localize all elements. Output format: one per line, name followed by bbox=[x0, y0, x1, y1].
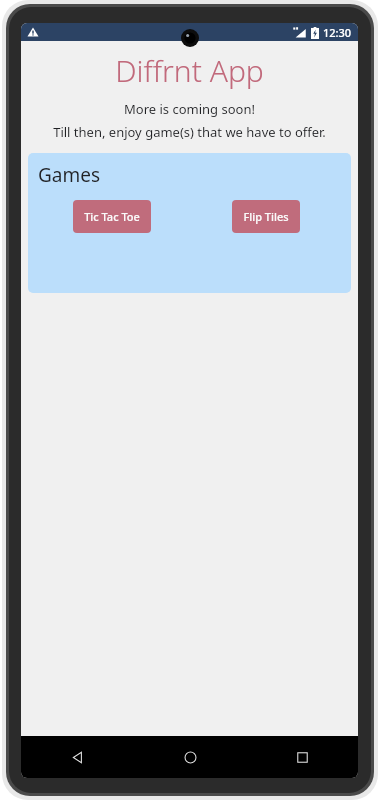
button[interactable]: Back bbox=[21, 736, 134, 778]
staticText: Till then, enjoy game(s) that we have to… bbox=[53, 123, 326, 141]
staticText: Tic Tac Toe bbox=[84, 209, 140, 224]
other: Warning bbox=[27, 26, 39, 38]
staticText: 12:30 bbox=[323, 25, 352, 40]
button[interactable]: Flip Tiles bbox=[232, 200, 300, 233]
button[interactable]: Tic Tac Toe bbox=[73, 200, 151, 233]
staticText: Diffrnt App bbox=[115, 50, 264, 91]
staticText: Flip Tiles bbox=[243, 209, 289, 224]
staticText: Games bbox=[38, 162, 101, 188]
button[interactable]: Home bbox=[134, 736, 246, 778]
staticText: More is coming soon! bbox=[124, 100, 255, 118]
button[interactable]: Recent apps bbox=[246, 736, 358, 778]
